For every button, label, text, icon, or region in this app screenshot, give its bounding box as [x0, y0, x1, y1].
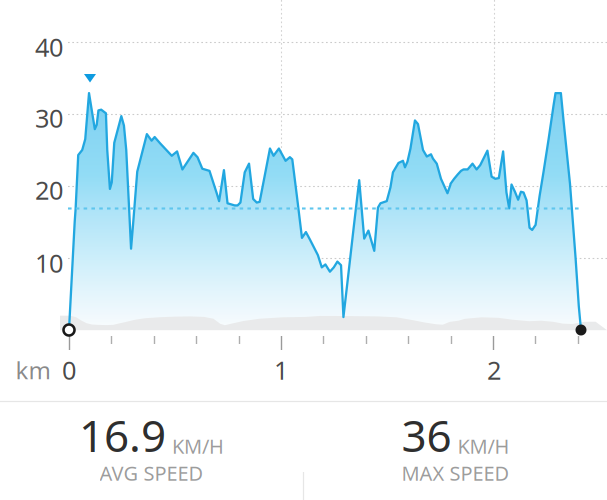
- staticText: AVG SPEED: [99, 460, 203, 486]
- staticText: 40: [35, 30, 63, 64]
- staticText: 30: [35, 101, 63, 135]
- staticText: 16.9: [79, 406, 166, 464]
- staticText: KM/H: [457, 433, 509, 459]
- button[interactable]: 16.9: [11, 415, 291, 477]
- staticText: 2: [487, 353, 501, 387]
- staticText: 36: [401, 406, 451, 464]
- staticText: km: [15, 354, 50, 386]
- staticText: 1: [274, 353, 288, 387]
- staticText: KM/H: [172, 433, 224, 459]
- staticText: 0: [62, 353, 76, 387]
- staticText: 20: [35, 173, 63, 207]
- button[interactable]: 36: [315, 415, 595, 477]
- staticText: 10: [35, 246, 63, 280]
- staticText: MAX SPEED: [401, 460, 509, 486]
